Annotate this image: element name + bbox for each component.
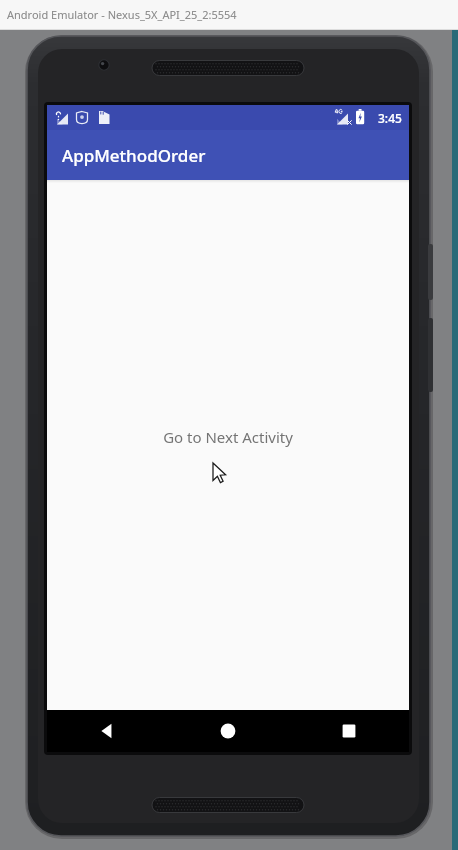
staticText: AppMethodOrder: [62, 144, 206, 167]
staticText: Android Emulator - Nexus_5X_API_25_2:555…: [7, 7, 237, 22]
button[interactable]: Back: [47, 710, 167, 752]
button[interactable]: Go to Next Activity: [155, 421, 301, 453]
button[interactable]: Recents: [288, 710, 409, 752]
button[interactable]: Home: [167, 710, 288, 752]
staticText: 3:45: [378, 110, 402, 126]
button[interactable]: AppMethodOrder: [47, 130, 409, 180]
staticText: Go to Next Activity: [163, 427, 293, 447]
